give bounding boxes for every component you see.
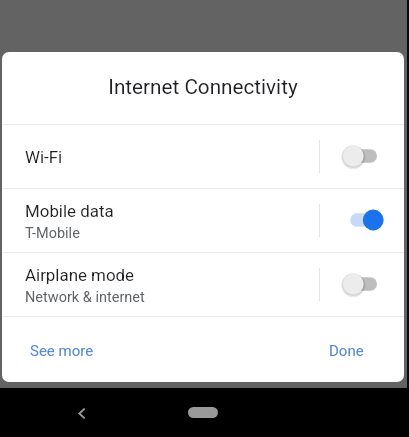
- staticText: Done: [329, 342, 364, 360]
- button[interactable]: Mobile data: [2, 189, 404, 252]
- staticText: Mobile data: [25, 201, 114, 221]
- staticText: Internet Connectivity: [2, 75, 404, 99]
- button[interactable]: Back: [66, 397, 98, 429]
- staticText: See more: [30, 342, 94, 360]
- staticText: Wi-Fi: [25, 147, 63, 167]
- staticText: Airplane mode: [25, 265, 135, 285]
- button[interactable]: Switch off: [334, 264, 392, 304]
- button[interactable]: Switch on: [334, 200, 392, 240]
- button[interactable]: Airplane mode: [2, 253, 404, 316]
- staticText: Network & internet: [25, 289, 145, 306]
- button[interactable]: Home: [188, 407, 218, 418]
- staticText: T-Mobile: [25, 225, 80, 242]
- button[interactable]: Done: [322, 336, 371, 366]
- button[interactable]: Wi-Fi: [2, 125, 404, 188]
- button[interactable]: See more: [23, 336, 101, 366]
- button[interactable]: Switch off: [334, 136, 392, 176]
